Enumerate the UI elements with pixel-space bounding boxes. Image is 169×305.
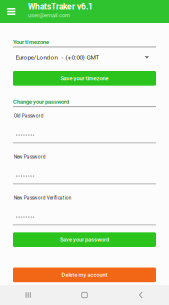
staticText: Save your password — [60, 236, 109, 243]
button[interactable]: Europe/London - (+0:00) GMT — [13, 47, 156, 71]
staticText: WhatsTraker v6.1 — [28, 2, 93, 12]
button[interactable]: Save your timezone — [13, 71, 156, 86]
button[interactable]: Home — [56, 285, 113, 305]
staticText: Save your timezone — [60, 75, 108, 82]
button[interactable]: Delete my account — [13, 267, 156, 282]
staticText: Your timezone — [13, 39, 49, 45]
button[interactable]: Save your password — [13, 232, 156, 247]
button[interactable]: Recent apps — [0, 285, 56, 305]
staticText: Delete my account — [61, 272, 107, 278]
staticText: Old Password — [14, 113, 44, 119]
staticText: New Password — [14, 154, 46, 160]
button[interactable]: Open navigation menu — [0, 0, 22, 23]
staticText: Change your password — [13, 98, 69, 105]
button[interactable]: Back — [113, 285, 169, 305]
staticText: user@email.com — [28, 12, 70, 19]
staticText: New Password Verification — [14, 195, 72, 201]
staticText: Europe/London - (+0:00) GMT — [15, 54, 99, 61]
